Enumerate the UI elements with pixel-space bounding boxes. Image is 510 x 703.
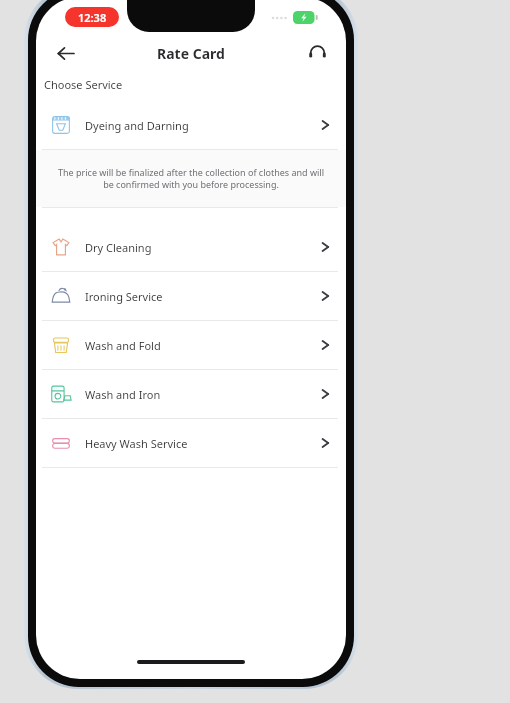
staticText: Heavy Wash Service bbox=[85, 436, 321, 451]
staticText: Ironing Service bbox=[85, 289, 321, 304]
staticText: Wash and Iron bbox=[85, 387, 321, 402]
staticText: Choose Service bbox=[44, 77, 123, 92]
button[interactable]: Heavy Wash Service bbox=[36, 419, 346, 467]
button[interactable]: Support bbox=[300, 36, 334, 70]
staticText: Wash and Fold bbox=[85, 338, 321, 353]
button[interactable]: Wash and Fold bbox=[36, 321, 346, 369]
staticText: Rate Card bbox=[157, 44, 225, 63]
button[interactable]: Wash and Iron bbox=[36, 370, 346, 418]
button[interactable]: Dyeing and Darning bbox=[36, 101, 346, 149]
staticText: The price will be finalized after the co… bbox=[56, 166, 326, 191]
button[interactable]: Ironing Service bbox=[36, 272, 346, 320]
button[interactable]: Back bbox=[48, 36, 82, 70]
staticText: Dyeing and Darning bbox=[85, 118, 321, 133]
button[interactable]: Dry Cleaning bbox=[36, 223, 346, 271]
staticText: Dry Cleaning bbox=[85, 240, 321, 255]
staticText: 12:38 bbox=[78, 10, 107, 25]
